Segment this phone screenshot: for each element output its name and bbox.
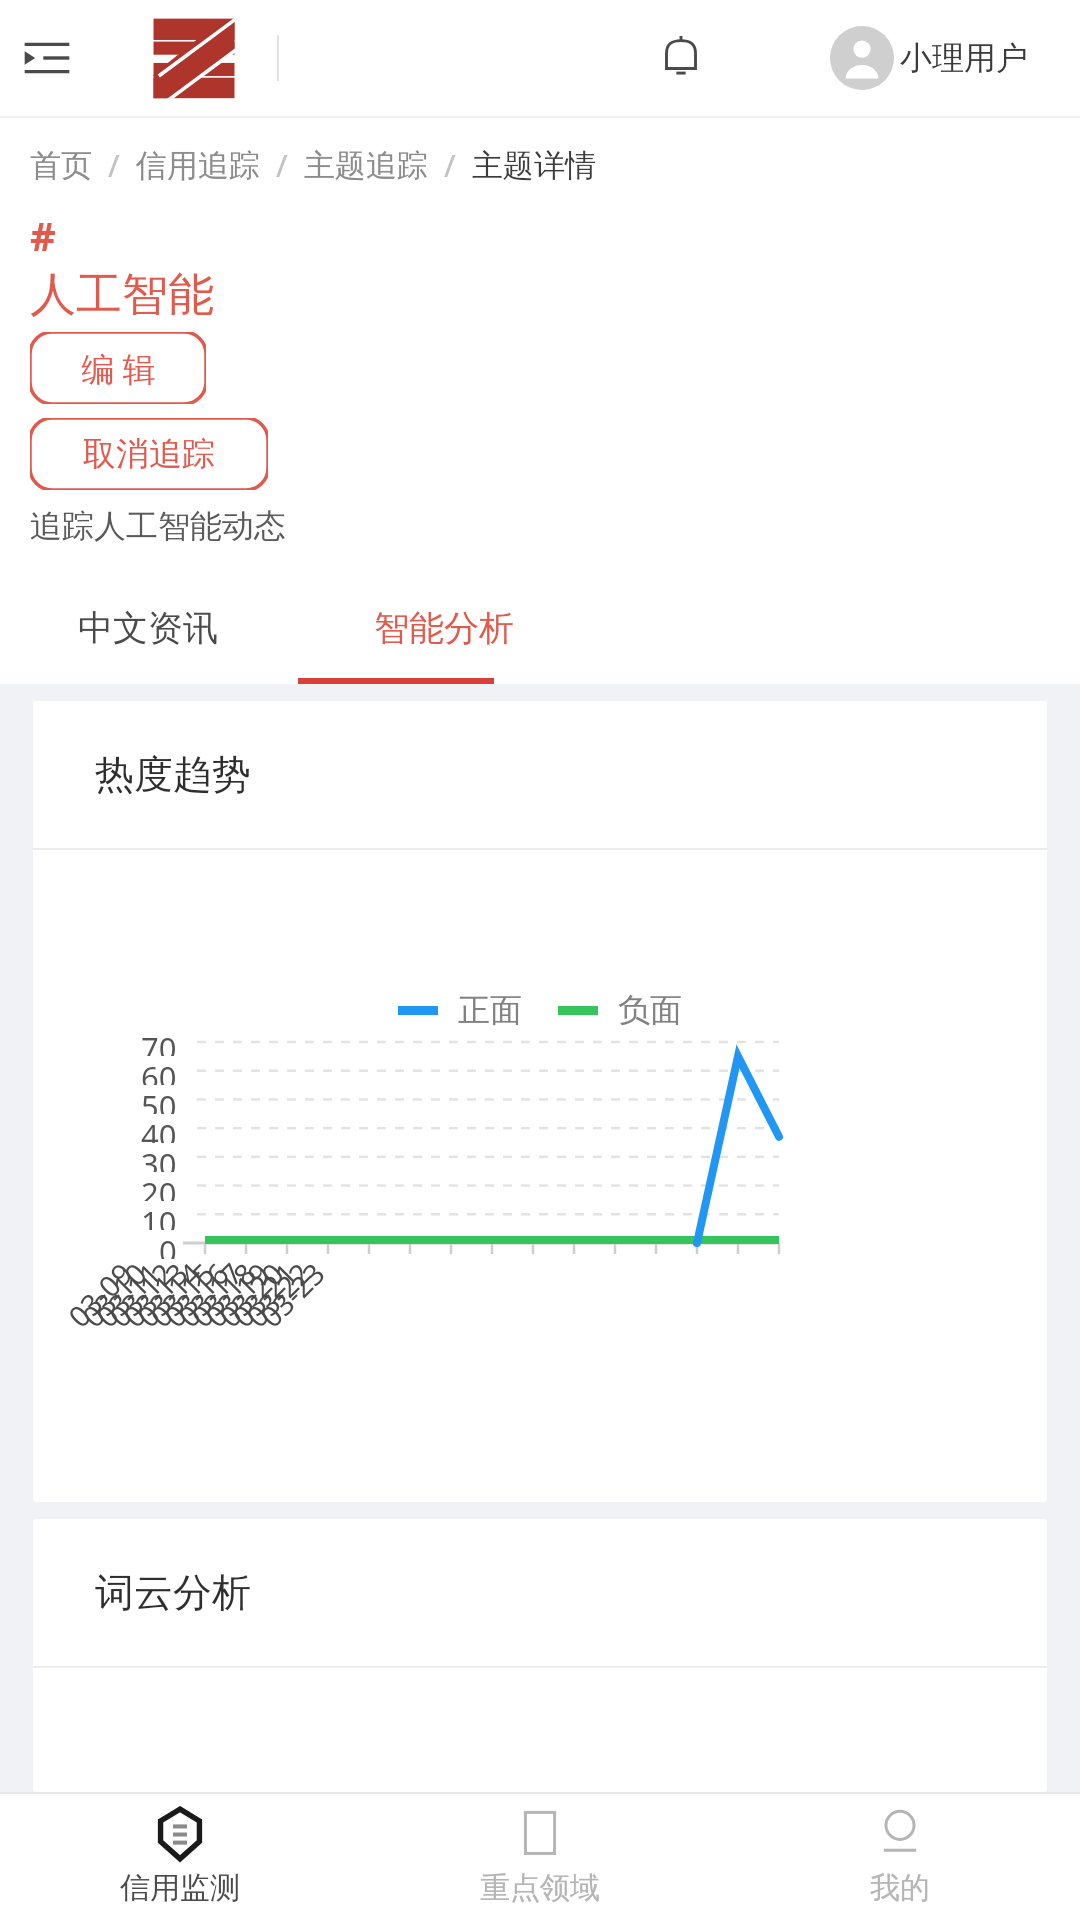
button[interactable]: 中文资讯 bbox=[0, 572, 296, 684]
staticText: 03-22 bbox=[237, 1254, 318, 1335]
staticText: 03-20 bbox=[210, 1254, 291, 1335]
staticText: 03-11 bbox=[87, 1254, 168, 1335]
staticText: 20 bbox=[141, 1172, 177, 1201]
staticText: 编 辑 bbox=[81, 346, 156, 391]
staticText: 03-17 bbox=[169, 1254, 250, 1335]
button[interactable]: Notifications bbox=[652, 29, 710, 87]
staticText: 03-18 bbox=[182, 1254, 263, 1335]
staticText: 智能分析 bbox=[374, 606, 514, 650]
staticText: 03-15 bbox=[141, 1254, 222, 1335]
staticText: 中文资讯 bbox=[78, 606, 218, 650]
staticText: 0 bbox=[159, 1230, 177, 1259]
staticText: 小理用户 bbox=[900, 38, 1028, 78]
staticText: 词云分析 bbox=[95, 1568, 251, 1617]
staticText: 30 bbox=[141, 1143, 177, 1172]
staticText: 热度趋势 bbox=[95, 750, 251, 799]
button[interactable]: 首页 bbox=[30, 146, 92, 185]
button[interactable]: 重点领域 bbox=[360, 1794, 720, 1920]
button[interactable]: 小理用户 bbox=[830, 26, 1028, 90]
staticText: 03-13 bbox=[114, 1254, 195, 1335]
staticText: / bbox=[428, 144, 472, 186]
button[interactable]: 我的 bbox=[720, 1794, 1080, 1920]
staticText: 03-12 bbox=[100, 1254, 181, 1335]
staticText: 我的 bbox=[870, 1869, 930, 1907]
staticText: # bbox=[30, 208, 56, 262]
staticText: 03-21 bbox=[223, 1254, 304, 1335]
staticText: 50 bbox=[141, 1085, 177, 1114]
staticText: 主题详情 bbox=[472, 146, 596, 185]
staticText: 信用监测 bbox=[120, 1869, 240, 1907]
staticText: / bbox=[92, 144, 136, 186]
staticText: / bbox=[260, 144, 304, 186]
staticText: 正面 bbox=[458, 990, 522, 1030]
staticText: 追踪人工智能动态 bbox=[30, 506, 286, 546]
staticText: 70 bbox=[141, 1027, 177, 1056]
staticText: 03-16 bbox=[155, 1254, 236, 1335]
staticText: 10 bbox=[141, 1201, 177, 1230]
button[interactable]: 主题追踪 bbox=[304, 146, 428, 185]
button[interactable]: Menu bbox=[16, 27, 78, 89]
button[interactable]: 编 辑 bbox=[30, 332, 206, 404]
staticText: 03-10 bbox=[73, 1254, 154, 1335]
staticText: 人工智能 bbox=[30, 266, 214, 324]
staticText: 负面 bbox=[618, 990, 682, 1030]
staticText: 重点领域 bbox=[480, 1869, 600, 1907]
button[interactable]: 取消追踪 bbox=[30, 418, 268, 490]
staticText: 03-19 bbox=[196, 1254, 277, 1335]
staticText: 60 bbox=[141, 1056, 177, 1085]
button[interactable]: 智能分析 bbox=[296, 572, 592, 684]
staticText: 03-23 bbox=[251, 1254, 332, 1335]
button[interactable]: 信用追踪 bbox=[136, 146, 260, 185]
staticText: 取消追踪 bbox=[83, 433, 215, 475]
staticText: 03-14 bbox=[128, 1254, 209, 1335]
staticText: 40 bbox=[141, 1114, 177, 1143]
button[interactable]: 信用监测 bbox=[0, 1794, 360, 1920]
staticText: 03-09 bbox=[59, 1254, 140, 1335]
